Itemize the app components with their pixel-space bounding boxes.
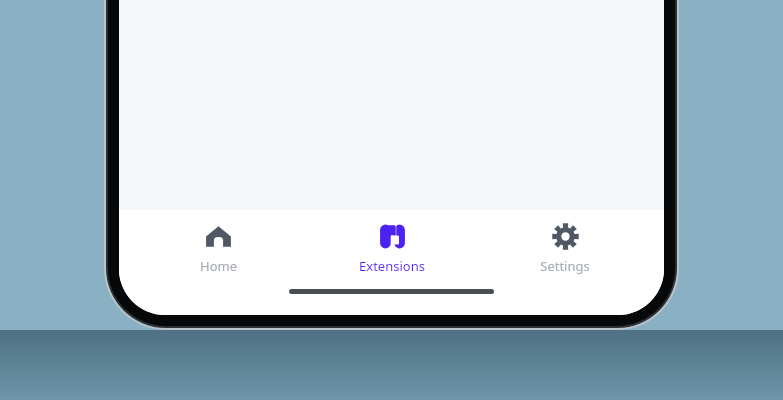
button[interactable]: Home <box>143 219 293 279</box>
staticText: Home <box>200 257 237 275</box>
staticText: Settings <box>540 257 590 275</box>
button[interactable]: Extensions <box>317 219 467 279</box>
other: Home <box>205 223 232 250</box>
staticText: Extensions <box>359 257 425 275</box>
button[interactable]: Settings <box>490 219 640 279</box>
other: Extensions <box>379 223 406 250</box>
other: Settings <box>552 223 579 250</box>
